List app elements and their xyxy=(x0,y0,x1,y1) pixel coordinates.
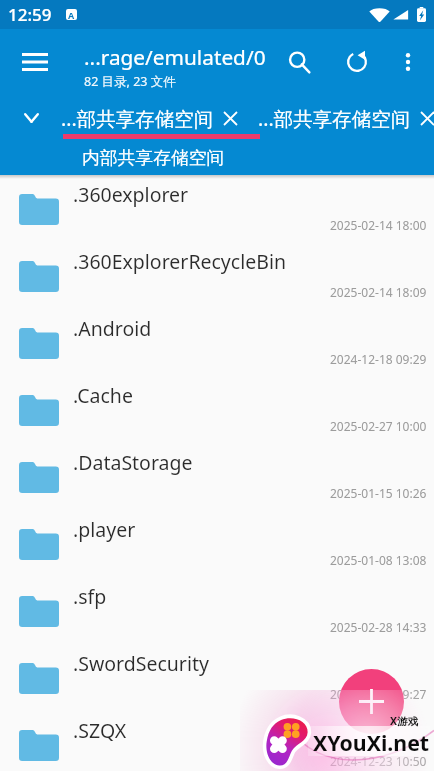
staticText: .Android xyxy=(73,315,152,342)
button[interactable]: More options xyxy=(386,29,430,95)
button[interactable]: Add xyxy=(339,669,404,734)
button[interactable]: .player xyxy=(0,510,434,577)
staticText: 82 目录, 23 文件 xyxy=(84,73,176,90)
button[interactable]: .DataStorage xyxy=(0,443,434,510)
button[interactable]: .Cache xyxy=(0,376,434,443)
button[interactable]: Close tab xyxy=(217,105,243,131)
button[interactable]: ...部共享存储空间 xyxy=(60,95,257,141)
button[interactable]: .sfp xyxy=(0,577,434,644)
staticText: 2025-02-27 10:00 xyxy=(330,418,427,434)
button[interactable]: .SZQX xyxy=(0,711,434,771)
button[interactable]: .SwordSecurity xyxy=(0,644,434,711)
staticText: .Cache xyxy=(73,382,133,409)
button[interactable]: Refresh xyxy=(333,29,381,95)
staticText: X游戏 xyxy=(390,714,419,728)
staticText: 2025-02-14 18:09 xyxy=(330,284,427,300)
staticText: 2024-12-18 09:29 xyxy=(330,351,427,367)
staticText: .player xyxy=(73,516,136,543)
staticText: 2025-02-14 18:00 xyxy=(330,217,427,233)
staticText: .360explorer xyxy=(73,181,189,208)
staticText: 2025-01-08 13:08 xyxy=(330,552,427,568)
staticText: ...部共享存储空间 xyxy=(258,105,411,132)
staticText: ...部共享存储空间 xyxy=(61,105,214,132)
button[interactable]: Search xyxy=(275,29,323,95)
staticText: XYouXi.net xyxy=(313,728,430,757)
staticText: .SZQX xyxy=(73,717,127,744)
staticText: .360ExplorerRecycleBin xyxy=(73,248,286,275)
staticText: .DataStorage xyxy=(73,449,193,476)
staticText: 2025-01-15 10:26 xyxy=(330,485,427,501)
button[interactable]: .360explorer xyxy=(0,175,434,242)
staticText: ...rage/emulated/0 xyxy=(84,43,266,71)
button[interactable]: Show tabs xyxy=(0,95,63,141)
button[interactable]: Menu xyxy=(1,29,68,95)
staticText: .sfp xyxy=(73,583,107,610)
staticText: 2024-12-23 10:50 xyxy=(330,753,427,769)
button[interactable]: Close tab xyxy=(414,105,434,131)
staticText: .SwordSecurity xyxy=(73,650,209,677)
button[interactable]: 内部共享存储空间 xyxy=(82,147,225,169)
staticText: 内部共享存储空间 xyxy=(82,147,225,169)
staticText: A xyxy=(68,9,75,20)
staticText: 12:59 xyxy=(8,3,52,26)
staticText: 2024-12-24 09:27 xyxy=(330,686,427,702)
staticText: 2025-02-28 14:33 xyxy=(330,619,427,635)
button[interactable]: ...部共享存储空间 xyxy=(257,95,434,141)
button[interactable]: .360ExplorerRecycleBin xyxy=(0,242,434,309)
button[interactable]: .Android xyxy=(0,309,434,376)
